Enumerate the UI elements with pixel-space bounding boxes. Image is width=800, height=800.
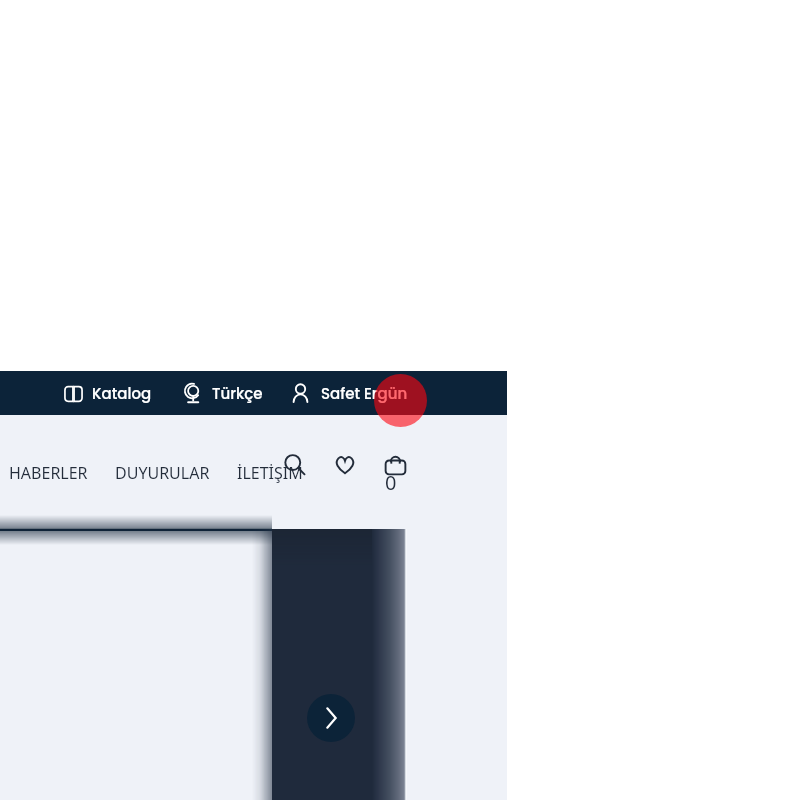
button[interactable]: Safet Ergün [293,371,408,415]
button[interactable]: Search [285,455,306,476]
staticText: Türkçe [212,383,263,404]
staticText: Safet Ergün [321,383,408,404]
button[interactable]: Next [307,694,355,742]
staticText: 0 [385,469,397,496]
button[interactable]: İLETİŞİM [237,462,303,484]
button[interactable]: Türkçe [184,371,263,415]
button[interactable]: Cart [385,454,406,490]
staticText: Katalog [92,383,152,404]
button[interactable]: Katalog [64,371,152,415]
button[interactable]: Favorites [335,456,355,474]
button[interactable]: HABERLER [9,462,88,484]
button[interactable]: DUYURULAR [115,462,210,484]
